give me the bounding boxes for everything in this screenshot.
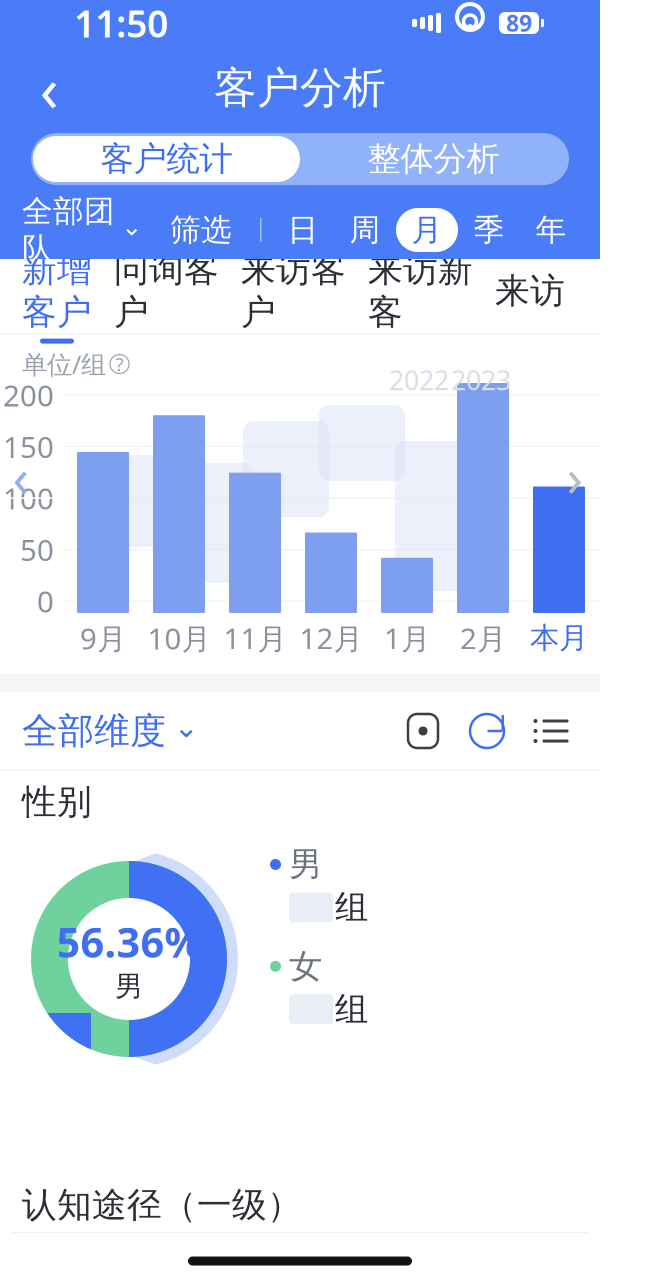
staticText: 全部团队 bbox=[22, 192, 115, 268]
staticText: 女 bbox=[289, 946, 322, 987]
button[interactable]: Back bbox=[18, 57, 80, 119]
staticText: 1月 bbox=[384, 618, 430, 657]
staticText: 季 bbox=[473, 211, 504, 249]
staticText: ? bbox=[115, 352, 123, 376]
staticText: 整体分析 bbox=[367, 138, 499, 179]
staticText: 男 bbox=[115, 969, 143, 1004]
button[interactable]: Pie chart bbox=[460, 704, 514, 758]
staticText: 认知途径（一级） bbox=[22, 1184, 302, 1226]
staticText: 0 bbox=[37, 581, 54, 620]
staticText: 56.36% bbox=[56, 914, 201, 969]
button[interactable]: List view bbox=[524, 704, 578, 758]
button[interactable]: 筛选 bbox=[142, 207, 232, 253]
staticText: 性别 bbox=[22, 781, 92, 823]
staticText: ⌄ bbox=[174, 710, 199, 744]
staticText: 12月 bbox=[299, 618, 362, 657]
button[interactable]: 季 bbox=[458, 208, 520, 252]
staticText: 来访 bbox=[495, 270, 565, 312]
button[interactable]: 来访 bbox=[495, 259, 587, 333]
staticText: 客户分析 bbox=[214, 62, 386, 114]
staticText: 10月 bbox=[147, 618, 210, 657]
staticText: 月 bbox=[411, 211, 442, 249]
staticText: 9月 bbox=[80, 618, 126, 657]
button[interactable]: 客户统计 bbox=[33, 136, 300, 182]
staticText: 年 bbox=[535, 211, 566, 249]
staticText: 客户统计 bbox=[100, 138, 232, 179]
button[interactable]: 年 bbox=[520, 208, 582, 252]
button[interactable]: Radar chart bbox=[396, 704, 450, 758]
staticText: 组 bbox=[335, 989, 368, 1030]
staticText: ‹ bbox=[12, 441, 29, 511]
button[interactable]: 日 bbox=[272, 208, 334, 252]
button[interactable]: 来访新客 bbox=[368, 259, 495, 333]
button[interactable]: Next period bbox=[558, 453, 592, 499]
staticText: 问询客户 bbox=[114, 248, 219, 334]
staticText: 150 bbox=[3, 427, 54, 466]
staticText: ⌄ bbox=[121, 212, 142, 241]
staticText: 新增客户 bbox=[22, 248, 92, 334]
staticText: 2月 bbox=[460, 618, 506, 657]
button[interactable]: 来访客户 bbox=[241, 259, 368, 333]
button[interactable]: Previous period bbox=[4, 453, 38, 499]
staticText: 2023 bbox=[451, 362, 511, 398]
button[interactable]: 全部维度 bbox=[22, 699, 199, 763]
staticText: 来访客户 bbox=[241, 248, 346, 334]
staticText: 2022 bbox=[389, 362, 449, 398]
button[interactable]: 问询客户 bbox=[114, 259, 241, 333]
staticText: 单位/组 bbox=[22, 347, 106, 381]
staticText: 男 bbox=[289, 844, 322, 885]
button[interactable]: 周 bbox=[334, 208, 396, 252]
staticText: 日 bbox=[287, 211, 318, 249]
staticText: 周 bbox=[349, 211, 380, 249]
staticText: ‹ bbox=[39, 47, 58, 129]
staticText: 89 bbox=[506, 8, 532, 38]
staticText: 200 bbox=[3, 375, 54, 414]
staticText: 11:50 bbox=[74, 0, 168, 48]
button[interactable]: 整体分析 bbox=[300, 136, 567, 182]
staticText: 全部维度 bbox=[22, 709, 166, 753]
staticText: 50 bbox=[20, 530, 54, 569]
staticText: 筛选 bbox=[170, 211, 232, 249]
staticText: 100 bbox=[3, 478, 54, 517]
button[interactable]: 全部团队 bbox=[22, 207, 142, 253]
button[interactable]: 月 bbox=[396, 208, 458, 252]
staticText: 组 bbox=[335, 887, 368, 928]
staticText: 来访新客 bbox=[368, 248, 473, 334]
button[interactable]: 新增客户 bbox=[22, 259, 114, 333]
staticText: › bbox=[566, 441, 583, 511]
staticText: 11月 bbox=[223, 618, 286, 657]
staticText: 本月 bbox=[530, 620, 588, 656]
